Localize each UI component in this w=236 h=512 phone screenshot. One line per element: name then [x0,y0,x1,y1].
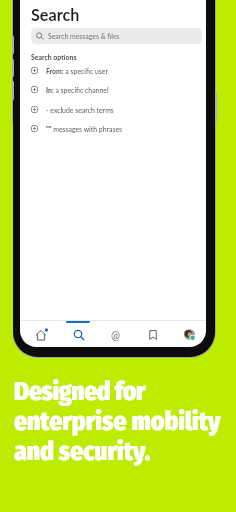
staticText: Search [31,5,80,24]
button[interactable]: Search messages & files [31,28,202,44]
staticText: enterprise mobility [14,406,221,437]
staticText: and security. [14,436,151,467]
staticText: "" messages with phrases [46,125,123,133]
staticText: - exclude search terms [46,106,114,114]
staticText: Designed for [14,376,146,407]
button[interactable] [134,328,171,341]
button[interactable]: "" messages with phrases [31,119,206,138]
button[interactable]: @ [97,328,134,341]
button[interactable] [22,328,60,341]
staticText: From: a specific user [46,67,108,75]
button[interactable] [171,328,206,341]
staticText: In: a specific channel [46,86,109,94]
staticText: Search messages & files [48,32,120,40]
button[interactable]: In: a specific channel [31,80,206,99]
button[interactable] [60,328,97,341]
button[interactable]: From: a specific user [31,61,206,80]
staticText: @ [111,328,121,341]
staticText: Search options [31,53,77,61]
button[interactable]: - exclude search terms [31,100,206,119]
